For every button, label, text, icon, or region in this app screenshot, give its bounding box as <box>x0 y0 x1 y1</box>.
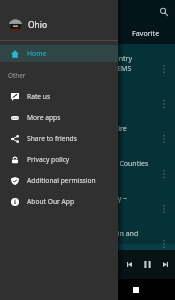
staticText: Privacy policy <box>27 155 70 164</box>
staticText: Township Fire and Rescue Depts/EMS <box>9 64 132 74</box>
button[interactable]: More options <box>158 168 170 180</box>
button[interactable]: Additional permission <box>0 170 118 191</box>
button[interactable]: Next <box>159 258 172 271</box>
staticText: State Highway Patrol Public Safety ~ <box>9 194 128 204</box>
button[interactable]: More options <box>158 133 170 145</box>
button[interactable]: Share to friends <box>0 128 118 149</box>
button[interactable]: Cincinnati Hamilton Butler Franklin and <box>0 226 175 250</box>
staticText: Rate us <box>27 92 51 101</box>
staticText: Statewide <box>9 204 42 214</box>
button[interactable]: Ohio <box>0 0 118 40</box>
button[interactable]: Nearby <box>59 22 117 44</box>
button[interactable]: More options <box>158 98 170 110</box>
staticText: About Our App <box>27 197 75 206</box>
staticText: Cleveland Division of Police and Fire <box>9 124 127 134</box>
button[interactable]: Columbus Franklin and Delaware Counties <box>0 156 175 191</box>
button[interactable]: Recent <box>0 22 59 44</box>
button[interactable]: Recents <box>127 281 145 299</box>
staticText: Cincinnati Hamilton Butler Franklin and <box>9 229 139 239</box>
staticText: Additional permission <box>27 176 96 185</box>
staticText: Ohio <box>28 19 47 30</box>
button[interactable]: More apps <box>0 107 118 128</box>
staticText: Summit County <box>9 99 60 109</box>
button[interactable]: About Our App <box>0 191 118 212</box>
staticText: Central Ohio <box>9 169 51 179</box>
staticText: Favorite <box>132 28 160 38</box>
button[interactable]: Akron Police <box>0 86 175 121</box>
staticText: Other <box>8 71 26 80</box>
button[interactable]: Cleveland Division of Police and Fire <box>0 121 175 156</box>
button[interactable]: Pause <box>141 258 154 271</box>
button[interactable]: More options <box>158 63 170 75</box>
button[interactable]: Previous <box>123 258 136 271</box>
staticText: Recent <box>18 28 42 38</box>
staticText: Home <box>27 49 47 58</box>
staticText: Summit County Police Fire + Coventry <box>9 54 132 64</box>
button[interactable]: More options <box>158 238 170 250</box>
button[interactable]: More options <box>158 203 170 215</box>
staticText: Cuyahoga <box>9 134 43 144</box>
button[interactable]: Rate us <box>0 86 118 107</box>
button[interactable]: Privacy policy <box>0 149 118 170</box>
staticText: Share to friends <box>27 134 77 143</box>
button[interactable]: Summit County Police Fire + Coventry <box>0 51 175 86</box>
staticText: Akron Police <box>9 89 50 99</box>
button[interactable]: Favorite <box>117 22 175 44</box>
staticText: Columbus Franklin and Delaware Counties <box>9 159 149 169</box>
button[interactable]: Home <box>0 45 118 62</box>
button[interactable]: State Highway Patrol Public Safety ~ <box>0 191 175 226</box>
button[interactable]: Search <box>156 4 171 19</box>
staticText: More apps <box>27 113 61 122</box>
